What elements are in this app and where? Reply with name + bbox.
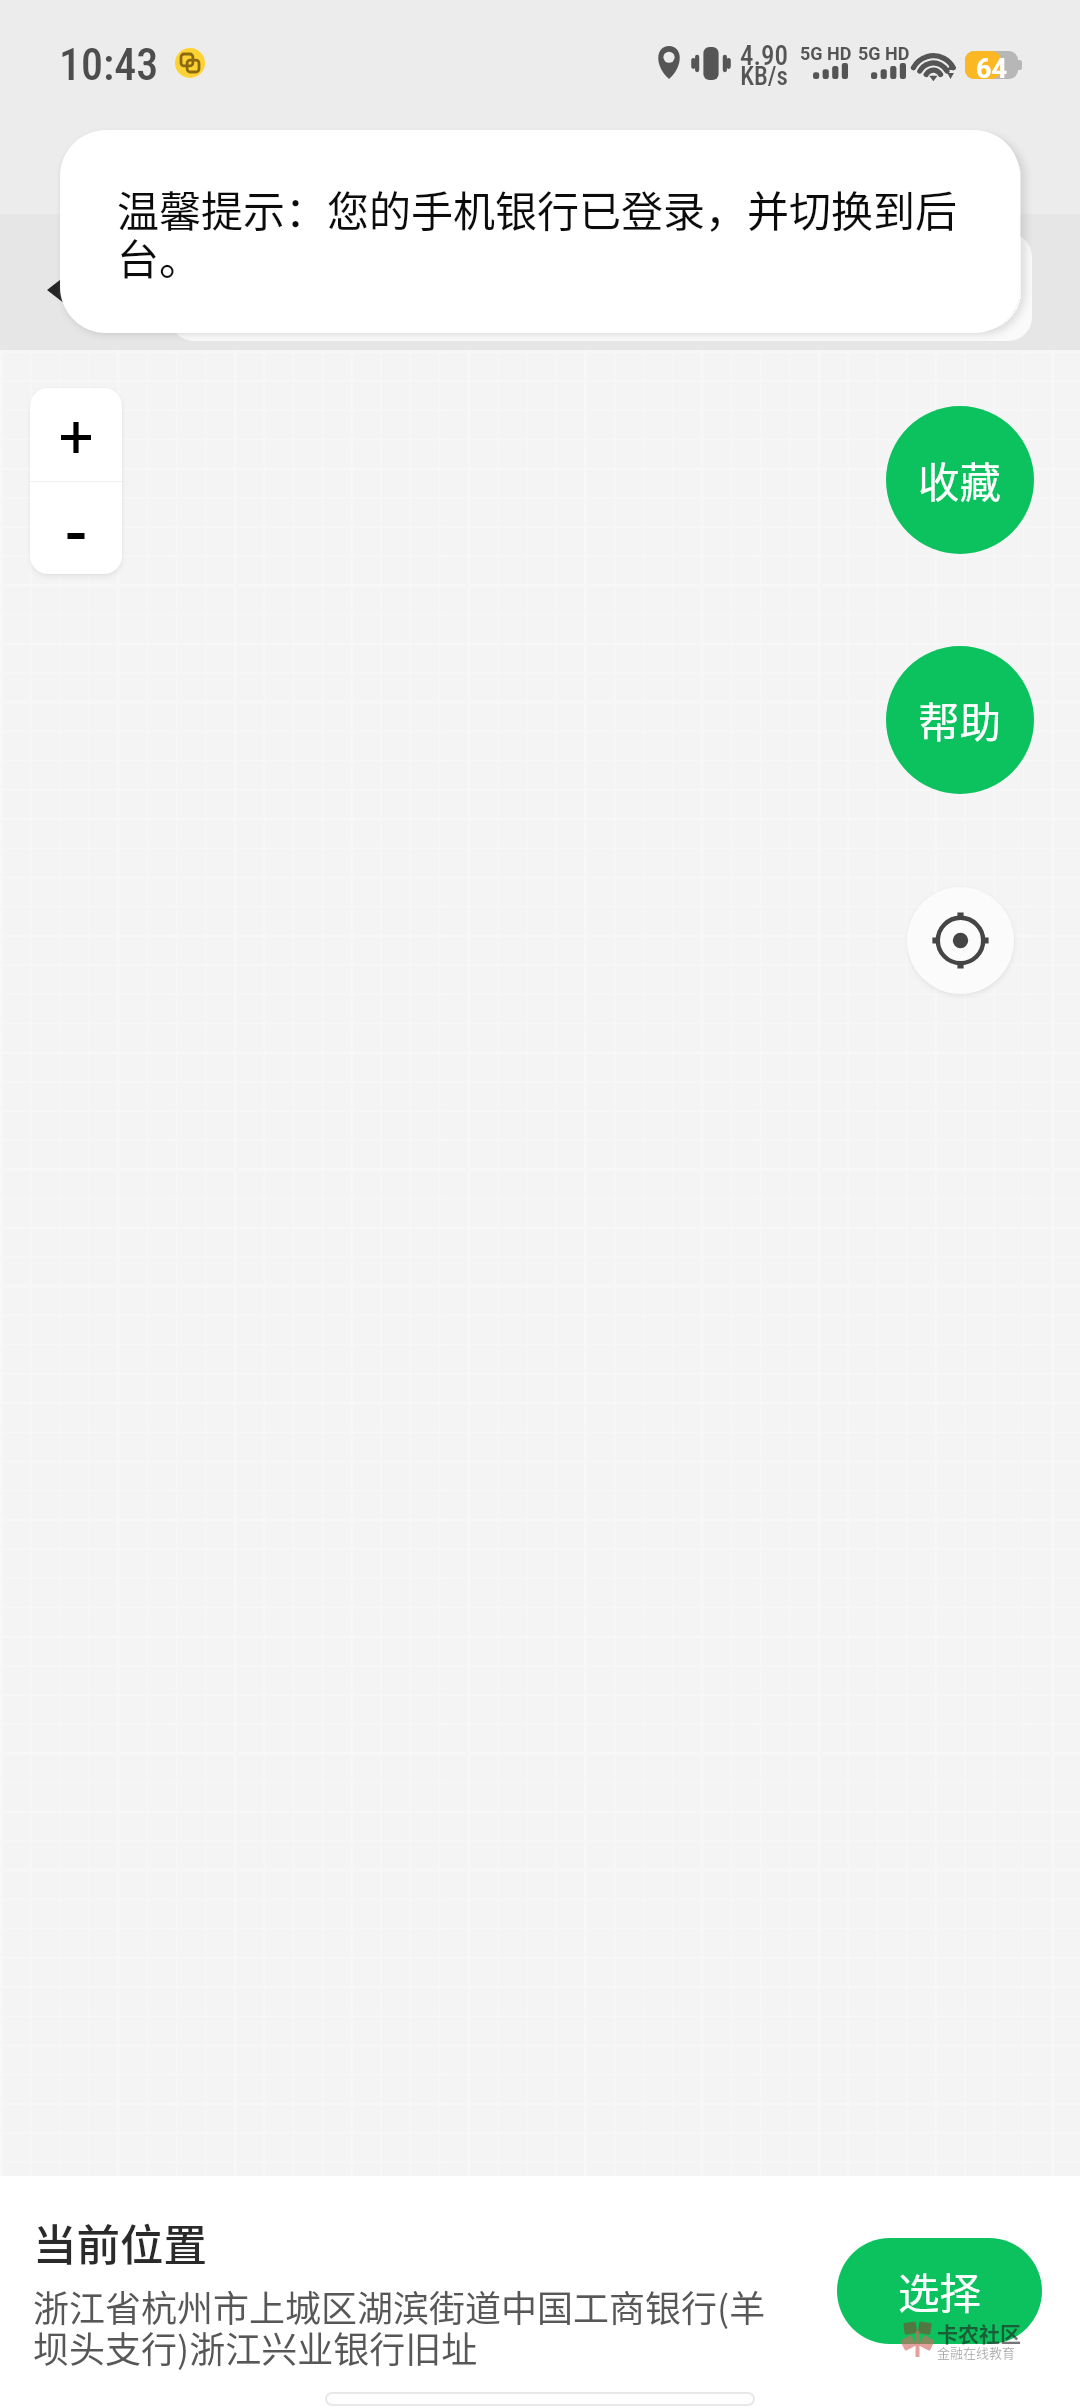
button[interactable]: Zoom in [30,388,122,481]
staticText: 10:43 [59,39,159,91]
button[interactable]: My location [907,887,1014,994]
button[interactable]: Back [22,248,106,332]
staticText: 5G HD [800,43,852,64]
staticText: 温馨提示：您的手机银行已登录，并切换到后台。 [117,189,967,285]
staticText: 浙江省杭州市上城区湖滨街道中国工商银行(羊坝头支行)浙江兴业银行旧址 [33,2289,777,2371]
button[interactable]: Zoom out [30,482,122,574]
staticText: 帮助 [918,690,1002,750]
button[interactable]: Search [170,233,1032,341]
staticText: 选择 [898,2261,982,2321]
button[interactable]: 收藏 [886,406,1034,554]
staticText: 当前位置 [33,2224,207,2270]
staticText: 收藏 [918,450,1002,510]
staticText: 4.90 [735,40,793,72]
staticText: KB/s [731,62,797,91]
button[interactable]: 帮助 [886,646,1034,794]
button[interactable]: 选择 [837,2238,1042,2344]
staticText: 64 [971,53,1012,85]
staticText: 卡农社区 [937,2318,1021,2348]
staticText: 5G HD [858,43,910,64]
staticText: 金融在线教育 [937,2343,1016,2362]
